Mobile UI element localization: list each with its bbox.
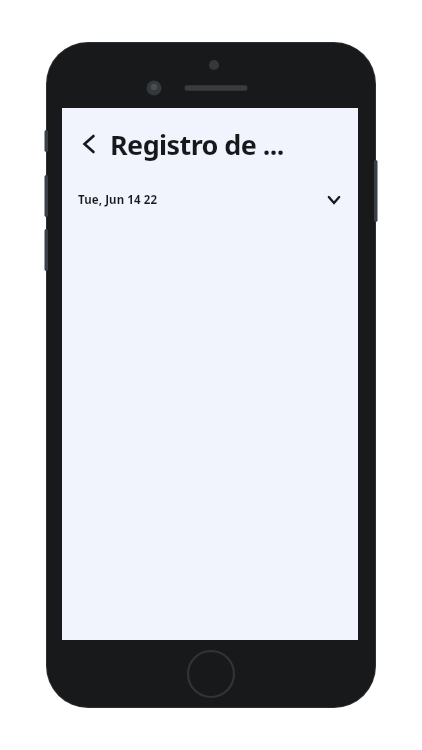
button[interactable]: Tue, Jun 14 22 (62, 180, 358, 220)
button[interactable]: Back (70, 127, 104, 161)
staticText: Registro de ... (110, 126, 284, 163)
staticText: Tue, Jun 14 22 (78, 192, 158, 208)
other: Home (181, 644, 241, 704)
